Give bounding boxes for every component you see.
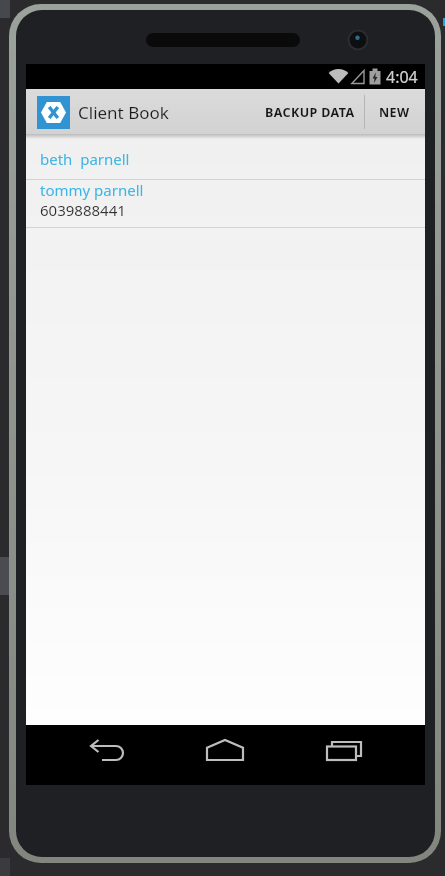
button[interactable]	[205, 739, 245, 765]
staticText: NEW	[379, 104, 410, 121]
button[interactable]: beth parnell	[26, 139, 425, 179]
staticText: beth parnell	[40, 149, 130, 169]
staticText: tommy parnell	[40, 180, 144, 200]
staticText: 6039888441	[40, 200, 126, 220]
button[interactable]: tommy parnell	[26, 180, 425, 227]
button[interactable]	[87, 739, 127, 765]
staticText: BACKUP DATA	[265, 104, 355, 121]
button[interactable]	[325, 739, 365, 765]
staticText: Client Book	[78, 101, 169, 124]
button[interactable]: BACKUP DATA	[256, 89, 364, 135]
staticText: 4:04	[386, 66, 418, 88]
button[interactable]: NEW	[365, 89, 425, 135]
